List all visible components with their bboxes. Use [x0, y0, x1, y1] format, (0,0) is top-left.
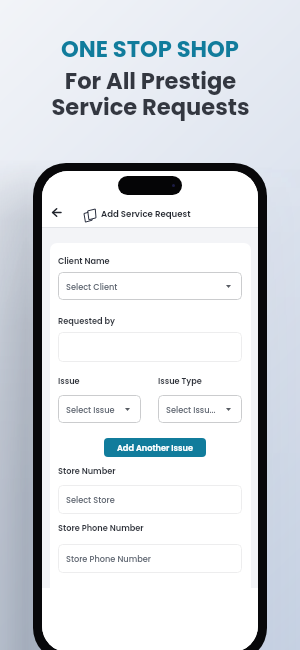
staticText: Store Phone Number: [66, 553, 151, 564]
staticText: Store Number: [58, 465, 116, 476]
staticText: Select Store: [66, 494, 115, 505]
button[interactable]: Add Another Issue: [104, 438, 206, 457]
button[interactable]: Select Issu...: [158, 395, 242, 423]
button[interactable]: Back: [50, 206, 63, 219]
button[interactable]: Select Client: [58, 272, 242, 300]
staticText: Add Another Issue: [117, 442, 193, 453]
staticText: ONE STOP SHOP: [61, 33, 239, 65]
other: Service requests: [84, 209, 96, 222]
button[interactable]: [58, 332, 242, 362]
button[interactable]: Select Store: [58, 485, 242, 514]
staticText: Select Issue: [66, 404, 115, 415]
staticText: Store Phone Number: [58, 522, 144, 533]
staticText: Select Issu...: [166, 404, 216, 415]
button[interactable]: Store Phone Number: [58, 544, 242, 573]
button[interactable]: Select Issue: [58, 395, 141, 423]
staticText: For All Prestige Service Requests: [51, 65, 250, 123]
staticText: Client Name: [58, 255, 110, 266]
staticText: Requested by: [58, 315, 116, 326]
staticText: Issue Type: [158, 375, 202, 386]
staticText: Add Service Request: [101, 208, 191, 220]
staticText: Select Client: [66, 281, 118, 292]
staticText: Issue: [58, 375, 80, 386]
